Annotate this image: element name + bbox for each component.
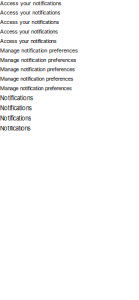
staticText: Notifications xyxy=(0,105,32,112)
staticText: Manage notification preferences xyxy=(0,76,73,82)
staticText: Manage notification preferences xyxy=(0,47,78,54)
staticText: Access your notifications xyxy=(0,0,62,6)
staticText: Access your notifications xyxy=(0,38,57,44)
staticText: Notifications xyxy=(0,94,33,102)
staticText: Manage notification preferences xyxy=(0,66,75,73)
staticText: Access your notifications xyxy=(0,19,59,25)
staticText: Access your notifications xyxy=(0,9,60,16)
staticText: Notifications xyxy=(0,125,31,132)
staticText: Access your notifications xyxy=(0,28,58,35)
staticText: Notifications xyxy=(0,115,31,122)
staticText: Manage notification preferences xyxy=(0,85,72,92)
staticText: Manage notification preferences xyxy=(0,57,76,63)
